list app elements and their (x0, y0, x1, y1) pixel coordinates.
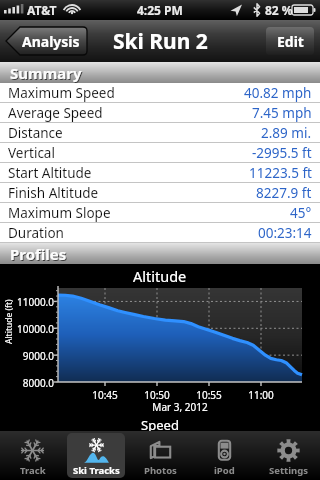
staticText: 9000.0 (10, 349, 54, 363)
staticText: Ski Run 2 (113, 27, 208, 56)
staticText: AT&T (27, 2, 57, 18)
staticText: 2.89 mi. (261, 124, 312, 142)
button[interactable]: Distance (0, 123, 320, 143)
staticText: Average Speed (8, 104, 103, 122)
button[interactable]: Track (3, 433, 61, 478)
staticText: Distance (8, 124, 63, 142)
staticText: 10000.0 (10, 322, 54, 336)
staticText: Photos (144, 464, 177, 477)
staticText: Profiles (11, 245, 68, 264)
staticText: Speed (0, 416, 320, 431)
staticText: 7.45 mph (252, 104, 312, 122)
staticText: Summary (10, 63, 82, 83)
button[interactable]: Maximum Speed (0, 83, 320, 103)
staticText: 82 % (265, 2, 293, 18)
staticText: Duration (8, 224, 64, 242)
staticText: 11000.0 (10, 295, 54, 309)
staticText: -2995.5 ft (252, 144, 312, 162)
button[interactable]: Start Altitude (0, 163, 320, 183)
staticText: Maximum Slope (8, 204, 111, 222)
staticText: 40.82 mph (244, 84, 312, 102)
staticText: Analysis (22, 32, 80, 51)
button[interactable]: Photos (131, 433, 189, 478)
staticText: 11:00 (245, 388, 277, 402)
staticText: 00:23:14 (258, 224, 312, 242)
staticText: Edit (277, 32, 304, 51)
button[interactable]: Average Speed (0, 103, 320, 123)
staticText: Profiles (10, 244, 67, 264)
staticText: Mar 3, 2012 (58, 400, 302, 414)
button[interactable]: iPod (195, 433, 253, 478)
staticText: 10:55 (193, 388, 225, 402)
staticText: Maximum Speed (8, 84, 115, 102)
staticText: 10:50 (141, 388, 173, 402)
staticText: Altitude (133, 266, 187, 286)
button[interactable]: Duration (0, 223, 320, 243)
staticText: 8000.0 (10, 376, 54, 390)
staticText: Finish Altitude (8, 184, 99, 202)
button[interactable]: Maximum Slope (0, 203, 320, 223)
staticText: 11223.5 ft (249, 164, 312, 182)
staticText: 4:25 PM (137, 2, 183, 18)
staticText: Settings (269, 464, 308, 477)
button[interactable]: Edit (266, 27, 314, 55)
staticText: Track (20, 464, 46, 477)
button[interactable]: Finish Altitude (0, 183, 320, 203)
button[interactable]: Settings (259, 433, 317, 478)
staticText: Ski Tracks (73, 464, 120, 477)
staticText: 45° (290, 204, 312, 222)
staticText: Vertical (8, 144, 55, 162)
button[interactable]: Back to Analysis (5, 27, 87, 55)
staticText: Summary (11, 64, 83, 83)
button[interactable]: Vertical (0, 143, 320, 163)
staticText: 10:45 (89, 388, 121, 402)
staticText: Start Altitude (8, 164, 92, 182)
staticText: 8227.9 ft (256, 184, 312, 202)
staticText: Altitude (ft) (3, 299, 15, 344)
button[interactable]: Ski Tracks (67, 433, 125, 478)
staticText: iPod (214, 464, 235, 477)
